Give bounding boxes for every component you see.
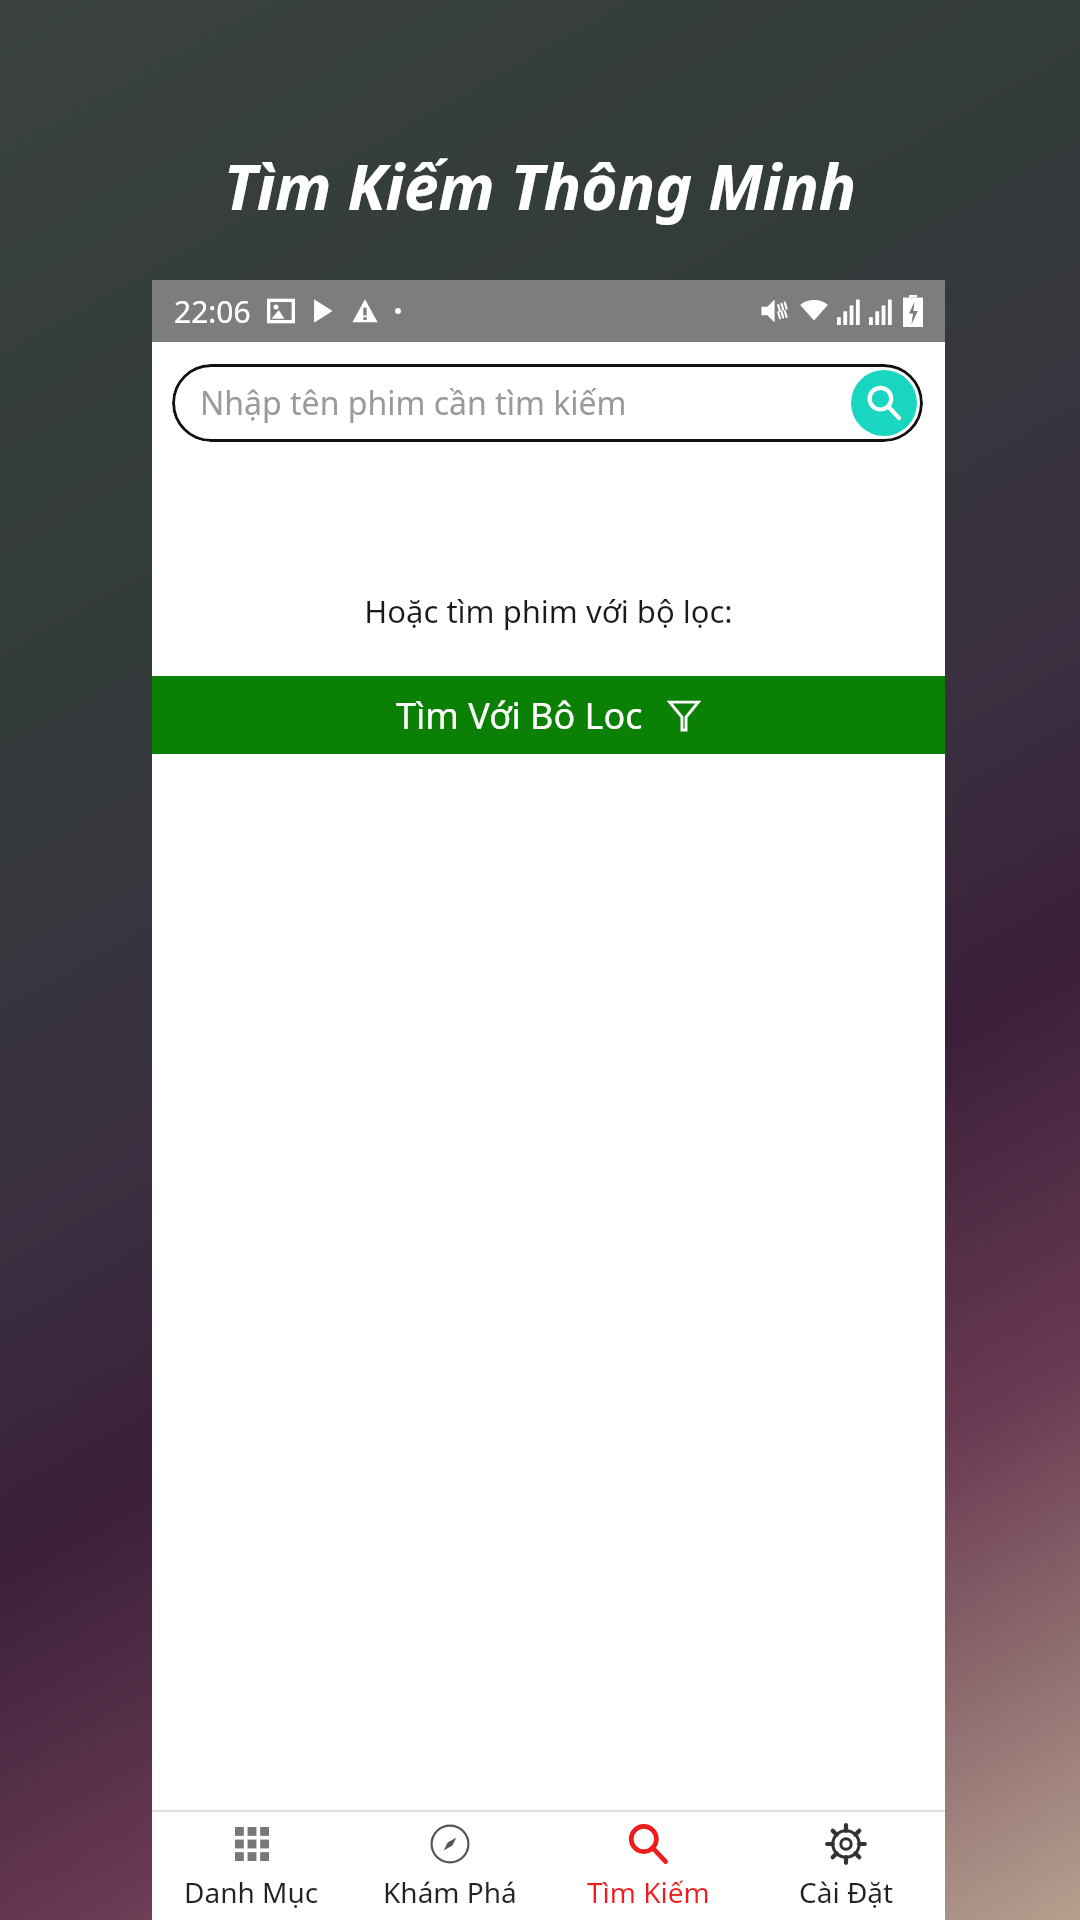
staticText: Nhập tên phim cần tìm kiếm [200,381,627,425]
staticText: Tìm Kiếm [587,1873,710,1911]
staticText: Tìm Kiếm Thông Minh [0,144,1080,228]
button[interactable]: Danh Mục [152,1812,351,1920]
button[interactable]: Khám Phá [351,1812,549,1920]
staticText: Cài Đặt [799,1873,894,1911]
staticText: Tìm Với Bô Loc [396,691,643,740]
staticText: Danh Mục [184,1873,319,1911]
button[interactable]: Nhập tên phim cần tìm kiếm [172,364,923,442]
button[interactable]: Tìm Kiếm [549,1812,747,1920]
button[interactable]: Search [851,370,917,436]
button[interactable]: Tìm Với Bô Loc [152,676,945,754]
staticText: Khám Phá [383,1873,517,1911]
staticText: 22:06 [174,291,251,332]
button[interactable]: Cài Đặt [747,1812,945,1920]
staticText: Hoặc tìm phim với bộ lọc: [152,590,945,632]
